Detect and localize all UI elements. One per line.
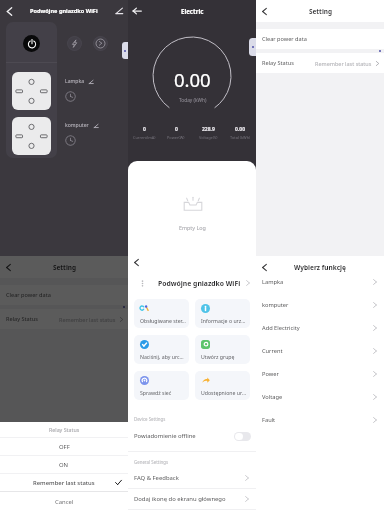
button[interactable]: OFF [0,438,128,455]
staticText: Remember last status [33,479,95,487]
staticText: Sprawdź sieć [140,389,172,396]
button[interactable]: Utwórz grupę [195,335,250,364]
staticText: ON [59,461,69,469]
button[interactable]: Schedule komputer [65,135,76,146]
staticText: Naciśnij, aby urch... [140,353,186,360]
staticText: Relay Status [6,315,38,323]
staticText: 0 [143,126,146,133]
button[interactable]: Relay Status [256,53,384,73]
staticText: Lampka [262,278,371,286]
staticText: Empty Log [179,224,206,231]
button[interactable]: Dodaj ikonę do ekranu głównego [134,489,251,509]
staticText: 0 [175,126,178,133]
button[interactable]: Back [3,262,14,273]
button[interactable]: Podwójne gniazdko WiFi [133,272,252,294]
button[interactable]: Clear power data [0,285,128,305]
button[interactable]: Back [259,6,270,17]
staticText: Dodaj ikonę do ekranu głównego [134,495,243,503]
button[interactable]: komputer [65,122,99,129]
staticText: Relay Status [49,426,80,433]
button[interactable]: Power toggle [23,35,40,52]
staticText: Electric [181,7,204,15]
button[interactable]: FAQ & Feedback [134,468,251,488]
staticText: Clear power data [6,291,51,299]
button[interactable]: ON [0,456,128,473]
staticText: Setting [309,7,332,16]
button[interactable]: Open drawer [122,42,128,59]
staticText: Lampka [65,78,84,85]
staticText: Wybierz funkcję [294,263,346,272]
button[interactable]: Remember last status [0,474,128,491]
button[interactable]: Powiadomienie offline [134,426,251,446]
staticText: FAQ & Feedback [134,474,243,482]
staticText: Today (kWh) [179,97,207,104]
staticText: komputer [262,301,371,309]
button[interactable]: Edit name [114,6,124,16]
button[interactable]: komputer [262,293,379,316]
staticText: komputer [65,122,89,129]
button[interactable]: Udostępnione urz... [195,371,250,400]
button[interactable]: Current [262,339,379,362]
button[interactable]: Back [131,257,142,268]
button[interactable]: Obsługiwane ster... [134,299,189,328]
button[interactable]: Open drawer [249,38,256,56]
button[interactable]: Electricity statistics [67,36,82,51]
staticText: Power [262,370,371,378]
button[interactable]: Lampka [65,78,94,85]
staticText: Powiadomienie offline [134,432,234,440]
staticText: Podwójne gniazdko WiFi [158,279,244,288]
button[interactable]: Voltage [262,385,379,408]
button[interactable]: Settings [93,36,108,51]
staticText: Podwójne gniazdko WiFi [30,7,98,15]
staticText: Add Electricity [262,324,371,332]
staticText: Fault [262,416,371,424]
button[interactable]: Add Electricity [262,316,379,339]
button[interactable]: Socket [12,72,51,110]
staticText: Setting [53,263,76,272]
staticText: General Settings [134,459,169,465]
staticText: Cancel [55,498,74,506]
button[interactable]: Socket [12,117,51,155]
staticText: Current(mA) [133,135,156,140]
button[interactable]: Sprawdź sieć [134,371,189,400]
staticText: OFF [59,443,70,451]
button[interactable]: Offline notification toggle [234,432,251,441]
staticText: Obsługiwane ster... [140,317,186,324]
staticText: Udostępnione urz... [201,389,247,396]
staticText: 228.9 [202,126,215,133]
staticText: Relay Status [262,59,294,67]
button[interactable]: Informacje o urzą... [195,299,250,328]
staticText: Remember last status [315,60,372,67]
button[interactable]: Schedule Lampka [65,91,76,102]
button[interactable]: Back [3,5,16,18]
button[interactable]: Back [259,262,270,273]
button[interactable]: Clear power data [256,29,384,49]
staticText: 0.00 [174,67,211,92]
button[interactable]: Fault [262,408,379,431]
staticText: Utwórz grupę [201,353,235,360]
staticText: Voltage(V) [199,135,218,140]
button[interactable]: Back [131,5,143,17]
staticText: Device Settings [134,416,166,422]
staticText: Voltage [262,393,371,401]
staticText: Clear power data [262,35,307,43]
button[interactable]: Cancel [0,492,128,512]
staticText: Total (kWh) [230,135,251,140]
staticText: Informacje o urzą... [201,317,247,324]
button[interactable]: Naciśnij, aby urch... [134,335,189,364]
button[interactable]: Lampka [262,270,379,293]
staticText: Remember last status [59,316,116,323]
button[interactable]: Power [262,362,379,385]
button[interactable]: Relay Status [0,309,128,329]
staticText: Current [262,347,371,355]
staticText: Power(W) [167,135,185,140]
staticText: 0.00 [235,126,245,133]
